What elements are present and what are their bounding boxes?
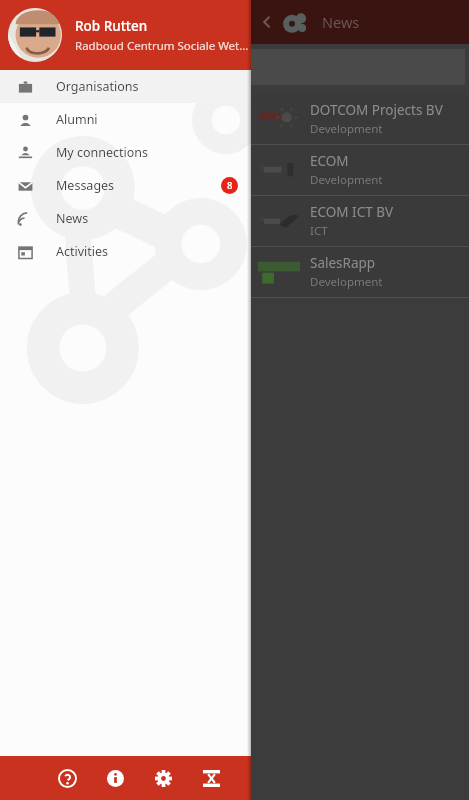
- button[interactable]: Alumni: [0, 103, 251, 136]
- staticText: ECOM: [310, 152, 349, 170]
- button[interactable]: DOTCOM Projects BV: [0, 94, 469, 144]
- staticText: News: [56, 210, 89, 227]
- button[interactable]: Back: [256, 11, 278, 33]
- button[interactable]: ECOM ICT BV: [0, 196, 469, 246]
- button[interactable]: Info: [100, 763, 130, 793]
- staticText: Alumni: [56, 111, 98, 128]
- staticText: SalesRapp: [310, 254, 376, 272]
- button[interactable]: Organisations: [0, 70, 251, 103]
- staticText: Radboud Centrum Sociale Wetens…: [75, 38, 251, 54]
- staticText: Activities: [56, 243, 109, 260]
- button[interactable]: ec: [8, 49, 465, 85]
- staticText: Development: [310, 121, 383, 137]
- staticText: ECOM ICT BV: [310, 203, 394, 221]
- staticText: ec: [22, 59, 36, 76]
- button[interactable]: News: [0, 202, 251, 235]
- button[interactable]: Settings: [148, 763, 178, 793]
- button[interactable]: Help: [52, 763, 82, 793]
- button[interactable]: SalesRapp: [0, 247, 469, 297]
- button[interactable]: ECOM: [0, 145, 469, 195]
- button[interactable]: Activities: [0, 235, 251, 268]
- button[interactable]: Messages: [0, 169, 251, 202]
- button[interactable]: My connections: [0, 136, 251, 169]
- staticText: ICT: [310, 223, 328, 239]
- staticText: DOTCOM Projects BV: [310, 101, 443, 119]
- staticText: Rob Rutten: [75, 17, 148, 35]
- staticText: Development: [310, 172, 383, 188]
- staticText: 8: [227, 179, 233, 192]
- staticText: My connections: [56, 144, 149, 161]
- button[interactable]: Rob Rutten: [0, 0, 251, 70]
- staticText: News: [322, 12, 360, 32]
- staticText: Messages: [56, 177, 115, 194]
- staticText: Organisations: [56, 78, 139, 95]
- button[interactable]: Switch account: [196, 763, 226, 793]
- staticText: Development: [310, 274, 383, 290]
